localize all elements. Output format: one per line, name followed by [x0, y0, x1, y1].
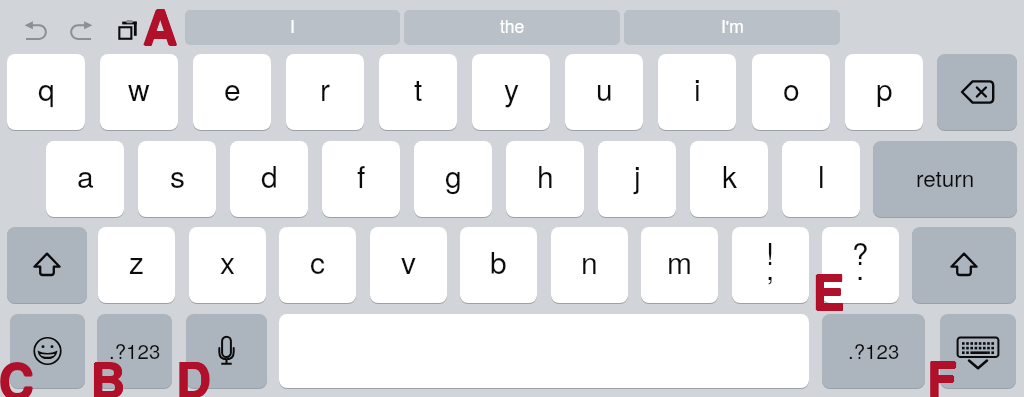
staticText: a [77, 154, 94, 197]
button[interactable]: I [185, 10, 400, 45]
staticText: v [401, 240, 416, 283]
button[interactable]: i [658, 54, 736, 130]
button[interactable]: e [193, 54, 271, 130]
staticText: l [818, 154, 825, 197]
button[interactable]: r [286, 54, 364, 130]
staticText: n [581, 240, 598, 283]
staticText: , [766, 246, 775, 288]
staticText: b [490, 240, 507, 283]
button[interactable]: I'm [624, 10, 840, 45]
button[interactable]: Shift [912, 227, 1016, 303]
staticText: A [143, 0, 178, 60]
staticText: o [783, 67, 800, 110]
button[interactable]: Redo [66, 10, 102, 42]
button[interactable]: v [370, 227, 447, 303]
staticText: E [813, 255, 846, 324]
staticText: A [143, 0, 178, 60]
button[interactable]: a [46, 141, 124, 217]
button[interactable]: return [873, 141, 1017, 217]
staticText: D [176, 344, 211, 397]
button[interactable]: x [189, 227, 266, 303]
staticText: F [927, 343, 957, 397]
staticText: E [813, 256, 846, 325]
staticText: the [500, 13, 525, 38]
staticText: I'm [721, 13, 744, 38]
staticText: q [38, 67, 55, 110]
button[interactable]: w [100, 54, 178, 130]
staticText: x [220, 240, 235, 283]
staticText: C [0, 346, 34, 397]
button[interactable]: j [598, 141, 676, 217]
staticText: C [0, 345, 33, 397]
staticText: s [170, 154, 185, 197]
button[interactable]: o [752, 54, 830, 130]
staticText: E [813, 256, 846, 325]
staticText: u [596, 67, 613, 110]
button[interactable]: .?123 [822, 314, 925, 388]
staticText: . [856, 246, 865, 288]
staticText: .?123 [109, 335, 161, 364]
button[interactable]: h [506, 141, 584, 217]
button[interactable]: Undo [20, 10, 56, 42]
button[interactable]: u [565, 54, 643, 130]
staticText: D [176, 343, 211, 397]
button[interactable]: f [322, 141, 400, 217]
staticText: h [537, 154, 554, 197]
staticText: D [176, 343, 211, 397]
staticText: z [129, 240, 144, 283]
button[interactable]: Dictation [186, 314, 267, 388]
button[interactable]: y [472, 54, 550, 130]
button[interactable]: n [551, 227, 628, 303]
button[interactable]: Delete [937, 54, 1017, 130]
button[interactable]: Shift [7, 227, 87, 303]
button[interactable]: Hide keyboard [940, 314, 1016, 388]
staticText: B [91, 343, 126, 397]
button[interactable]: d [230, 141, 308, 217]
button[interactable]: t [379, 54, 457, 130]
button[interactable]: Emoji [10, 314, 85, 388]
staticText: A [143, 0, 178, 59]
button[interactable]: c [279, 227, 356, 303]
staticText: C [0, 344, 34, 397]
button[interactable]: k [690, 141, 768, 217]
staticText: F [927, 344, 957, 397]
staticText: D [176, 343, 211, 397]
staticText: p [876, 67, 893, 110]
staticText: F [927, 343, 957, 397]
staticText: A [142, 0, 177, 60]
staticText: ! [766, 231, 775, 273]
staticText: F [927, 342, 957, 397]
staticText: t [414, 67, 423, 110]
staticText: c [310, 240, 325, 283]
button[interactable]: ! [732, 227, 809, 303]
button[interactable]: s [138, 141, 216, 217]
staticText: g [445, 154, 462, 197]
button[interactable]: g [414, 141, 492, 217]
staticText: w [128, 67, 150, 110]
button[interactable]: Paste [115, 18, 139, 42]
staticText: E [812, 256, 845, 325]
button[interactable]: b [460, 227, 537, 303]
staticText: return [916, 161, 975, 193]
staticText: e [224, 67, 241, 110]
staticText: k [722, 154, 737, 197]
button[interactable]: z [98, 227, 175, 303]
staticText: B [91, 344, 126, 397]
button[interactable]: p [845, 54, 923, 130]
button[interactable]: .?123 [97, 314, 172, 388]
staticText: I [290, 13, 295, 38]
staticText: C [0, 345, 35, 397]
staticText: B [90, 344, 125, 397]
button[interactable]: m [641, 227, 718, 303]
button[interactable]: q [7, 54, 85, 130]
staticText: B [91, 344, 126, 397]
staticText: E [813, 257, 846, 326]
button[interactable]: the [404, 10, 620, 45]
staticText: y [504, 67, 519, 110]
staticText: ? [852, 231, 869, 273]
staticText: d [261, 154, 278, 197]
staticText: .?123 [848, 335, 900, 364]
button[interactable]: l [782, 141, 860, 217]
button[interactable]: ? [822, 227, 899, 303]
